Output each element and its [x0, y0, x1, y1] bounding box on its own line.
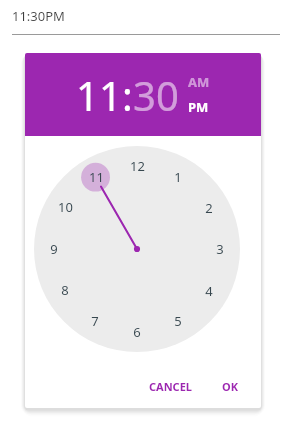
staticText: CANCEL	[149, 379, 192, 394]
staticText: 4	[205, 282, 213, 300]
staticText: 3	[216, 240, 224, 258]
button[interactable]: PM	[188, 97, 209, 117]
button[interactable]: OK	[212, 372, 249, 401]
staticText: 6	[133, 323, 141, 341]
button[interactable]: Clock face, 11 selected	[34, 146, 240, 352]
staticText: PM	[188, 98, 209, 116]
staticText: 5	[174, 312, 182, 330]
staticText: 11	[76, 68, 122, 122]
staticText: 30	[133, 68, 179, 122]
staticText: 7	[91, 312, 99, 330]
staticText: OK	[222, 379, 239, 394]
staticText: 2	[205, 199, 213, 217]
button[interactable]: 30	[133, 68, 179, 122]
staticText: 8	[61, 281, 69, 299]
staticText: :	[122, 68, 133, 122]
staticText: 11	[89, 168, 104, 186]
staticText: 1	[174, 168, 182, 186]
staticText: 9	[50, 240, 58, 258]
button[interactable]: 11	[76, 68, 122, 122]
staticText: 11:30PM	[12, 7, 65, 25]
staticText: 10	[58, 198, 73, 216]
staticText: 12	[130, 157, 145, 175]
button[interactable]: AM	[188, 72, 210, 92]
button[interactable]: CANCEL	[139, 372, 202, 401]
staticText: AM	[188, 73, 210, 91]
